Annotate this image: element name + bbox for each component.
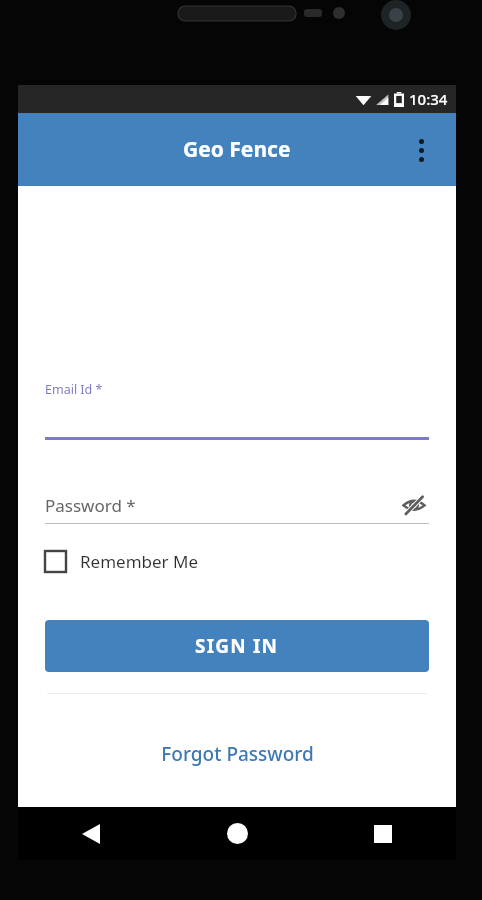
button[interactable]: Forgot Password <box>151 737 324 771</box>
button[interactable]: Recent apps <box>310 807 456 860</box>
staticText: 10:34 <box>409 89 448 109</box>
staticText: Email Id * <box>45 381 103 398</box>
staticText: Forgot Password <box>161 741 314 767</box>
staticText: Remember Me <box>80 550 199 573</box>
staticText: Geo Fence <box>183 135 291 164</box>
button[interactable]: Email Id * <box>45 381 429 440</box>
button[interactable]: SIGN IN <box>45 620 429 672</box>
button[interactable]: Remember Me <box>45 550 199 573</box>
button[interactable]: Home <box>164 807 310 860</box>
button[interactable]: Back <box>18 807 164 860</box>
button[interactable]: Show password <box>399 490 429 520</box>
button[interactable]: Password * <box>45 490 429 524</box>
staticText: Password * <box>45 494 399 517</box>
staticText: SIGN IN <box>195 633 279 659</box>
button[interactable]: More options <box>399 128 443 172</box>
